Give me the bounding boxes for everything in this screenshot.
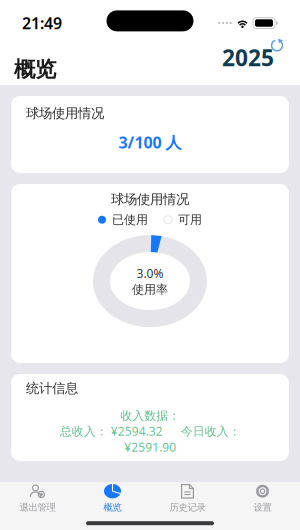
staticText: 球场使用情况 bbox=[26, 105, 104, 121]
staticText: 已使用 bbox=[112, 212, 148, 227]
staticText: 历史记录 bbox=[169, 502, 205, 513]
staticText: 3.0% bbox=[136, 265, 163, 281]
button[interactable]: 刷新 bbox=[222, 38, 284, 72]
staticText: 球场使用情况 bbox=[111, 191, 189, 207]
staticText: 设置 bbox=[253, 502, 271, 513]
staticText: 概览 bbox=[14, 56, 56, 83]
button[interactable]: 设置 bbox=[225, 479, 300, 513]
staticText: 可用 bbox=[178, 212, 202, 227]
staticText: 3/100 人 bbox=[118, 132, 181, 153]
staticText: 使用率 bbox=[132, 282, 168, 297]
staticText: 21:49 bbox=[22, 12, 62, 34]
button[interactable]: 退出管理 bbox=[0, 479, 75, 513]
staticText: 收入数据： 总收入： ¥2594.32 今日收入： ¥2591.90 bbox=[59, 408, 240, 455]
staticText: 退出管理 bbox=[19, 502, 55, 513]
staticText: 统计信息 bbox=[26, 380, 78, 396]
button[interactable]: 概览 bbox=[75, 479, 150, 513]
staticText: 2025 bbox=[222, 42, 274, 72]
staticText: 概览 bbox=[103, 502, 121, 513]
button[interactable]: 历史记录 bbox=[150, 479, 225, 513]
